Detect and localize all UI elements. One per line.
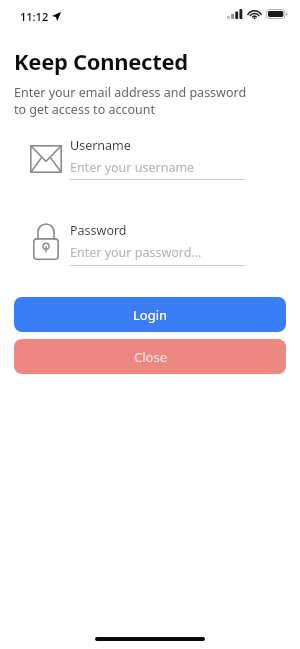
- staticText: Username: [70, 137, 131, 154]
- staticText: Login: [133, 306, 168, 324]
- other: Password: [33, 223, 59, 260]
- staticText: Enter your email address and password to…: [14, 84, 254, 118]
- other: Email: [30, 145, 62, 173]
- button[interactable]: Login: [14, 297, 286, 332]
- staticText: 11:12: [20, 9, 49, 24]
- staticText: Enter your username: [70, 159, 195, 176]
- staticText: Keep Connected: [14, 46, 188, 76]
- button[interactable]: Close: [14, 339, 286, 374]
- button[interactable]: Password: [14, 221, 286, 269]
- staticText: Close: [134, 348, 167, 366]
- staticText: Enter your password...: [70, 244, 202, 261]
- staticText: Password: [70, 222, 127, 239]
- button[interactable]: Email: [14, 136, 286, 184]
